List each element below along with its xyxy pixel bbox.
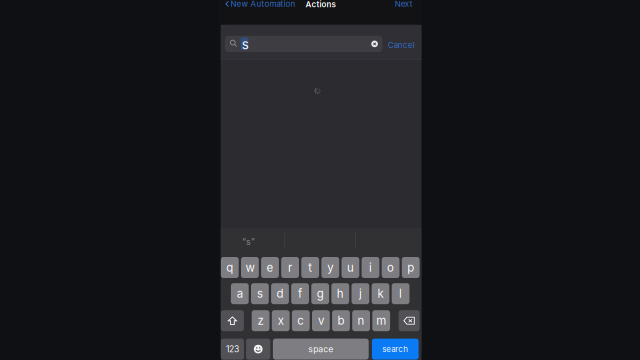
staticText: k	[377, 287, 383, 301]
button[interactable]: f	[291, 283, 309, 304]
staticText: o	[387, 261, 394, 274]
staticText: g	[317, 287, 324, 301]
staticText: Actions	[306, 0, 336, 9]
staticText: s	[257, 287, 263, 301]
button[interactable]: d	[271, 283, 289, 304]
staticText: p	[407, 261, 414, 274]
button[interactable]: t	[301, 257, 319, 278]
staticText: w	[245, 261, 254, 274]
button[interactable]: n	[352, 310, 370, 331]
staticText: e	[266, 261, 273, 274]
button[interactable]: g	[311, 283, 329, 304]
button[interactable]: w	[241, 257, 259, 278]
button[interactable]: Shift	[221, 310, 244, 331]
staticText: v	[318, 314, 324, 328]
staticText: x	[278, 314, 284, 328]
staticText: r	[288, 261, 292, 274]
staticText: i	[369, 261, 372, 274]
button[interactable]: Delete	[399, 310, 420, 331]
button[interactable]: search	[372, 339, 419, 360]
button[interactable]: Next	[395, 0, 413, 8]
button[interactable]: x	[272, 310, 290, 331]
button[interactable]: o	[382, 257, 399, 278]
staticText: space	[308, 344, 333, 354]
staticText: j	[359, 287, 362, 301]
button[interactable]: e	[261, 257, 279, 278]
staticText: Cancel	[388, 40, 415, 50]
staticText: f	[298, 287, 302, 301]
staticText: search	[382, 344, 408, 354]
button[interactable]: New Automation	[225, 0, 296, 8]
button[interactable]: 123	[221, 339, 244, 360]
staticText: d	[276, 287, 283, 301]
staticText: m	[376, 314, 386, 328]
button[interactable]: b	[332, 310, 350, 331]
button[interactable]: h	[331, 283, 349, 304]
button[interactable]: j	[351, 283, 369, 304]
staticText: “s”	[242, 237, 255, 247]
staticText: n	[358, 314, 365, 328]
button[interactable]: l	[392, 283, 409, 304]
staticText: New Automation	[231, 0, 296, 9]
button[interactable]: z	[252, 310, 269, 331]
staticText: a	[237, 287, 243, 301]
button[interactable]: p	[402, 257, 420, 278]
staticText: u	[347, 261, 354, 274]
button[interactable]: c	[292, 310, 310, 331]
button[interactable]: a	[231, 283, 249, 304]
staticText: q	[226, 261, 233, 274]
staticText: h	[337, 287, 344, 301]
button[interactable]: v	[312, 310, 330, 331]
staticText: 123	[226, 344, 239, 354]
staticText: t	[308, 261, 312, 274]
button[interactable]: m	[372, 310, 390, 331]
button[interactable]: i	[362, 257, 379, 278]
button[interactable]: u	[341, 257, 359, 278]
staticText: l	[399, 287, 402, 301]
staticText: z	[258, 314, 264, 328]
staticText: Next	[395, 0, 413, 9]
button[interactable]: Emoji keyboard	[246, 339, 270, 360]
button[interactable]: space	[273, 339, 369, 360]
staticText: b	[337, 314, 344, 328]
button[interactable]: Cancel	[388, 40, 415, 50]
button[interactable]: q	[221, 257, 239, 278]
button[interactable]: r	[281, 257, 299, 278]
staticText: s	[242, 36, 249, 52]
staticText: c	[297, 314, 304, 328]
button[interactable]: y	[321, 257, 339, 278]
staticText: y	[327, 261, 333, 274]
button[interactable]: s	[251, 283, 269, 304]
button[interactable]: k	[372, 283, 389, 304]
